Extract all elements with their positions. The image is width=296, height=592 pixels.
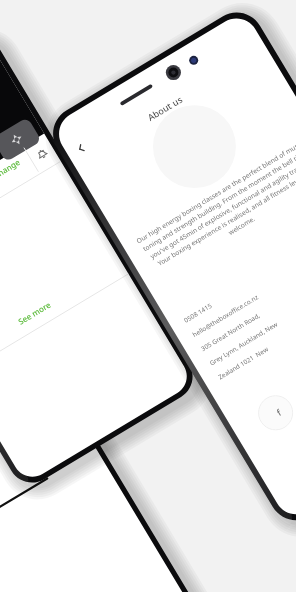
button[interactable]: App screens showcase — [0, 0, 296, 592]
